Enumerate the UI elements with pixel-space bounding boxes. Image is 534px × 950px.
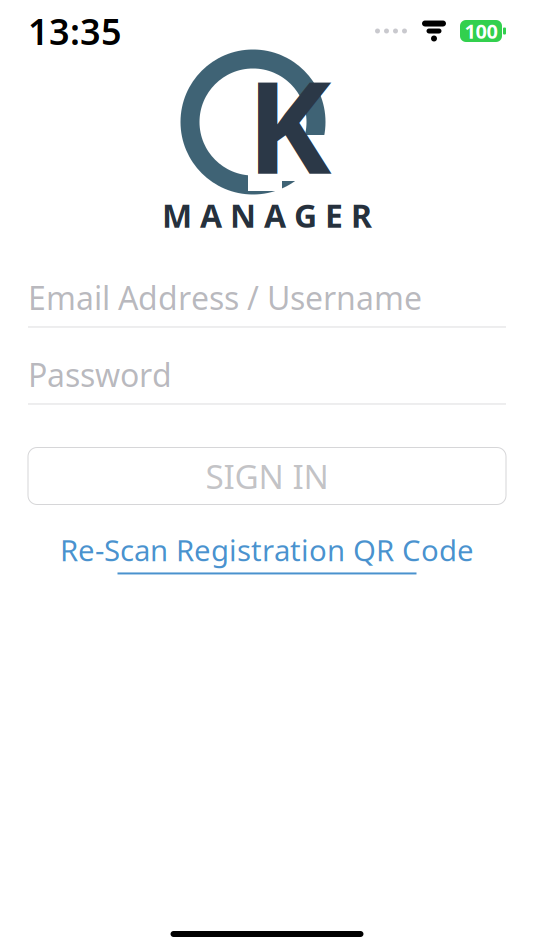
staticText: M A N A G E R bbox=[162, 194, 372, 236]
staticText: Re-Scan Registration QR Code bbox=[60, 530, 474, 569]
staticText: SIGN IN bbox=[205, 454, 328, 498]
button[interactable]: Re-Scan Registration QR Code bbox=[60, 530, 474, 574]
staticText: 100 bbox=[464, 18, 497, 44]
staticText: Password bbox=[28, 353, 172, 396]
staticText: 13:35 bbox=[28, 7, 122, 55]
staticText: K bbox=[246, 39, 331, 209]
button[interactable]: SIGN IN bbox=[28, 447, 506, 504]
staticText: Email Address / Username bbox=[28, 276, 422, 319]
